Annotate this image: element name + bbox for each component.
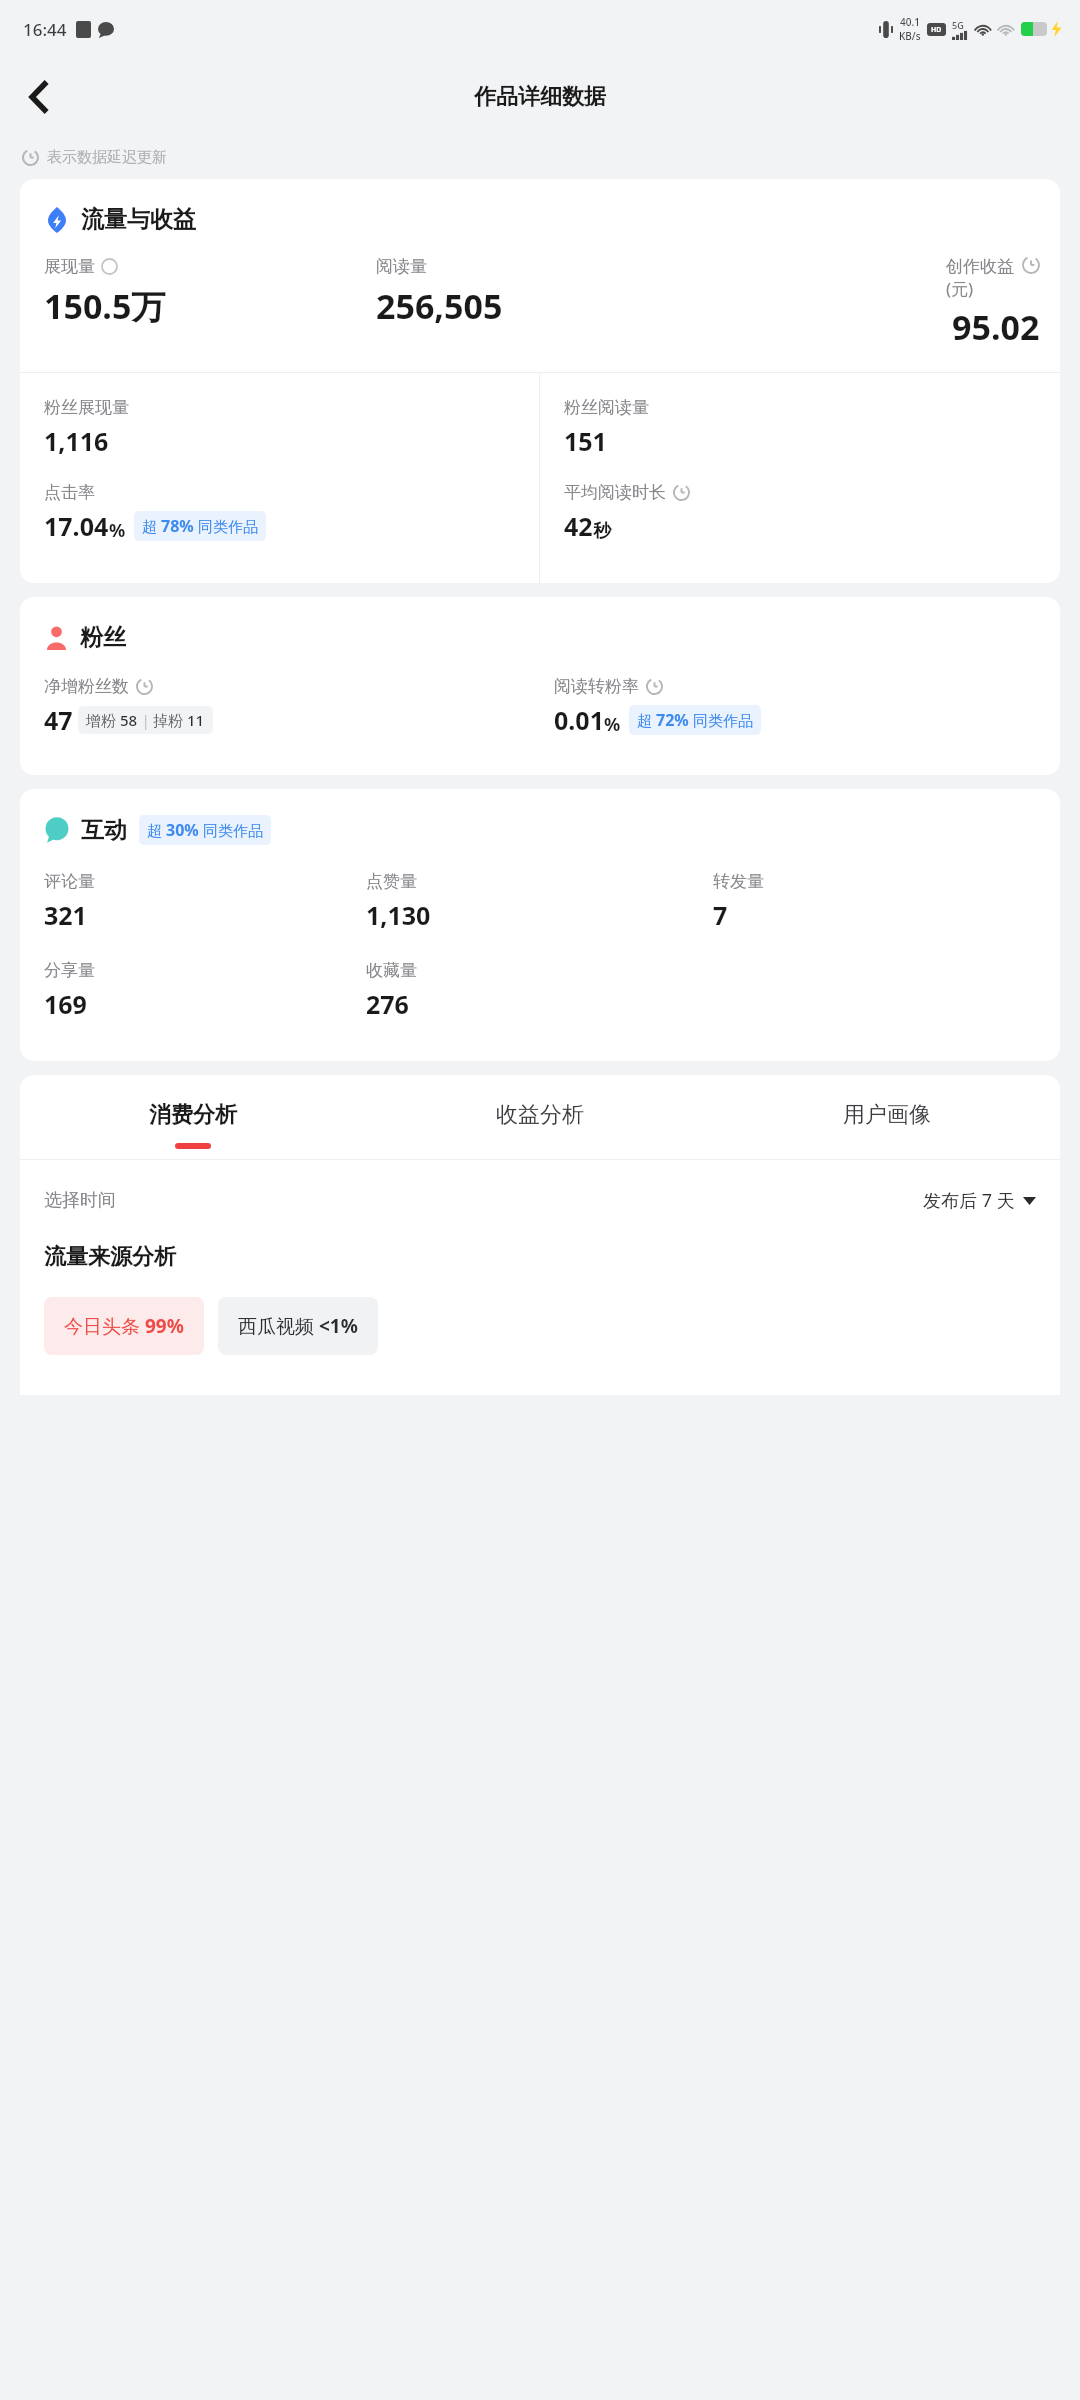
staticText: 99% — [145, 1313, 184, 1339]
staticText: 5G — [952, 19, 964, 31]
staticText: 用户画像 — [843, 1101, 931, 1129]
staticText: 消费分析 — [149, 1101, 237, 1129]
button[interactable]: 收益分析 — [366, 1101, 713, 1159]
staticText: 超 — [142, 516, 161, 536]
staticText: 47 — [44, 703, 73, 737]
staticText: 互动 — [81, 816, 127, 845]
staticText: 发布后 7 天 — [923, 1188, 1015, 1213]
staticText: KB/s — [899, 29, 921, 43]
button[interactable]: 返回 — [10, 68, 68, 126]
staticText: 78% — [161, 515, 194, 537]
staticText: 30% — [166, 819, 199, 841]
staticText: 同类作品 — [689, 710, 753, 730]
button[interactable]: 消费分析 — [20, 1101, 366, 1159]
staticText: HD — [931, 25, 942, 35]
staticText: 平均阅读时长 — [564, 482, 666, 503]
staticText: 256,505 — [376, 283, 503, 329]
staticText: 秒 — [593, 520, 611, 543]
staticText: % — [109, 518, 126, 543]
staticText: 点击率 — [44, 482, 95, 503]
staticText: 同类作品 — [194, 516, 258, 536]
staticText: 超 — [637, 710, 656, 730]
staticText: 选择时间 — [44, 1189, 116, 1212]
staticText: 作品详细数据 — [474, 83, 606, 111]
staticText: 11 — [187, 710, 205, 730]
staticText: 粉丝阅读量 — [564, 397, 649, 418]
button[interactable]: 今日头条 — [44, 1297, 204, 1355]
staticText: 收藏量 — [366, 960, 417, 981]
staticText: 超 — [147, 820, 166, 840]
staticText: 7 — [713, 898, 728, 932]
staticText: 粉丝 — [80, 623, 126, 652]
staticText: 分享量 — [44, 960, 95, 981]
staticText: 增粉 — [86, 710, 120, 730]
staticText: 掉粉 — [153, 710, 187, 730]
staticText: (元) — [946, 277, 974, 300]
staticText: 转发量 — [713, 871, 764, 892]
staticText: 0.01 — [554, 703, 604, 737]
staticText: 150.5万 — [44, 283, 166, 329]
button[interactable]: 用户画像 — [713, 1101, 1060, 1159]
staticText: 42 — [564, 509, 593, 543]
staticText: 16:44 — [23, 18, 67, 41]
staticText: 收益分析 — [496, 1101, 584, 1129]
staticText: 17.04 — [44, 509, 109, 543]
staticText: 151 — [564, 424, 607, 458]
staticText: 40.1 — [900, 15, 920, 29]
staticText: 展现量 — [44, 256, 95, 277]
staticText: 表示数据延迟更新 — [47, 148, 167, 167]
staticText: 阅读量 — [376, 256, 427, 277]
staticText: 点赞量 — [366, 871, 417, 892]
staticText: 西瓜视频 — [238, 1313, 319, 1339]
staticText: 1,130 — [366, 898, 431, 932]
staticText: 同类作品 — [199, 820, 263, 840]
staticText: 276 — [366, 987, 409, 1021]
staticText: % — [604, 712, 621, 737]
staticText: 净增粉丝数 — [44, 676, 129, 697]
staticText: | — [138, 711, 153, 730]
staticText: 72% — [656, 709, 689, 731]
staticText: 粉丝展现量 — [44, 397, 129, 418]
staticText: 阅读转粉率 — [554, 676, 639, 697]
button[interactable]: 西瓜视频 — [218, 1297, 378, 1355]
staticText: 评论量 — [44, 871, 95, 892]
staticText: 1,116 — [44, 424, 109, 458]
staticText: 创作收益 — [946, 256, 1014, 277]
staticText: 95.02 — [952, 304, 1040, 350]
staticText: 今日头条 — [64, 1313, 145, 1339]
staticText: 流量与收益 — [81, 205, 196, 234]
staticText: 58 — [120, 710, 138, 730]
staticText: 321 — [44, 898, 87, 932]
staticText: 169 — [44, 987, 87, 1021]
staticText: <1% — [319, 1313, 358, 1339]
staticText: 流量来源分析 — [44, 1243, 176, 1271]
button[interactable]: 发布后 7 天 — [923, 1188, 1036, 1213]
